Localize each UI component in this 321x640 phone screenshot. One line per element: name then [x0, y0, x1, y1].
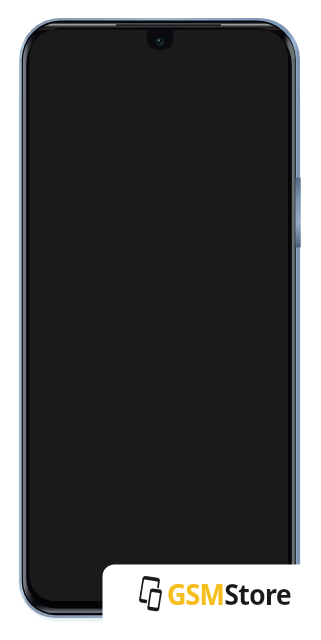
staticText: Store [224, 574, 291, 613]
button[interactable]: Phone product photo [19, 18, 300, 565]
button[interactable]: GSM [103, 565, 321, 640]
staticText: GSM [167, 574, 224, 613]
button[interactable]: Power button [294, 177, 301, 248]
